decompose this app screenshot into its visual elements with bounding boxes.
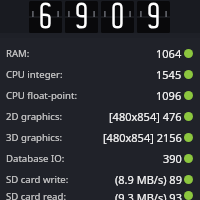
button[interactable]: 3D graphics:	[0, 127, 200, 148]
staticText: SD card read:	[6, 190, 66, 200]
staticText: 3D graphics:	[6, 131, 63, 144]
staticText: (8.9 MB/s) 89	[115, 172, 182, 187]
button[interactable]: Total score 6909	[0, 0, 200, 33]
button[interactable]: SD card write:	[0, 169, 200, 190]
button[interactable]: CPU integer:	[0, 64, 200, 85]
staticText: 390	[163, 151, 182, 166]
button[interactable]: SD card read:	[0, 190, 200, 200]
staticText: SD card write:	[6, 173, 69, 186]
button[interactable]: Database IO:	[0, 148, 200, 169]
staticText: RAM:	[6, 47, 30, 60]
staticText: Database IO:	[6, 152, 65, 165]
staticText: [480x854] 476	[109, 109, 182, 124]
staticText: [480x854] 2156	[103, 130, 182, 145]
staticText: (9.3 MB/s) 93	[115, 190, 182, 200]
staticText: CPU integer:	[6, 68, 63, 81]
staticText: 1545	[156, 67, 182, 82]
button[interactable]: 2D graphics:	[0, 106, 200, 127]
staticText: 2D graphics:	[6, 110, 63, 123]
staticText: 1096	[156, 88, 182, 103]
staticText: CPU float-point:	[6, 89, 78, 102]
button[interactable]: CPU float-point:	[0, 85, 200, 106]
button[interactable]: RAM:	[0, 43, 200, 64]
staticText: 1064	[156, 46, 182, 61]
